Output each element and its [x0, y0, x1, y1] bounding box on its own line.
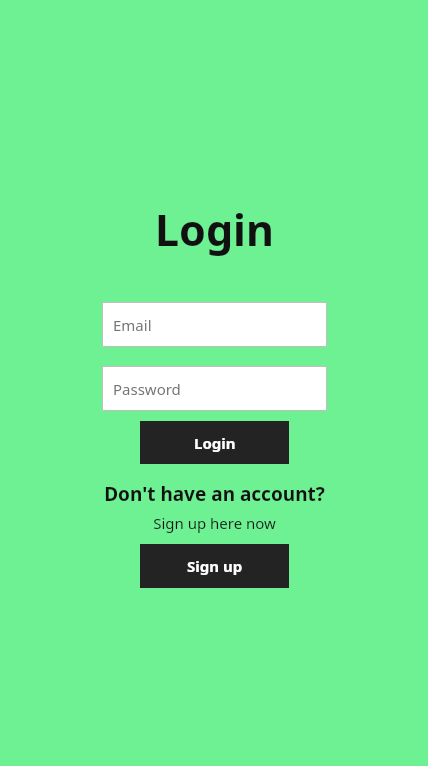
button[interactable]: Sign up here now	[153, 513, 276, 533]
button[interactable]: Sign up	[140, 544, 289, 588]
staticText: Password	[113, 379, 181, 399]
button[interactable]: Login	[140, 421, 289, 464]
staticText: Login	[155, 200, 274, 259]
staticText: Login	[194, 433, 236, 453]
staticText: Sign up	[187, 556, 243, 576]
staticText: Don't have an account?	[104, 481, 325, 507]
staticText: Sign up here now	[153, 513, 276, 533]
button[interactable]: Email	[102, 302, 327, 347]
staticText: Email	[113, 315, 152, 335]
button[interactable]: Password	[102, 366, 327, 411]
